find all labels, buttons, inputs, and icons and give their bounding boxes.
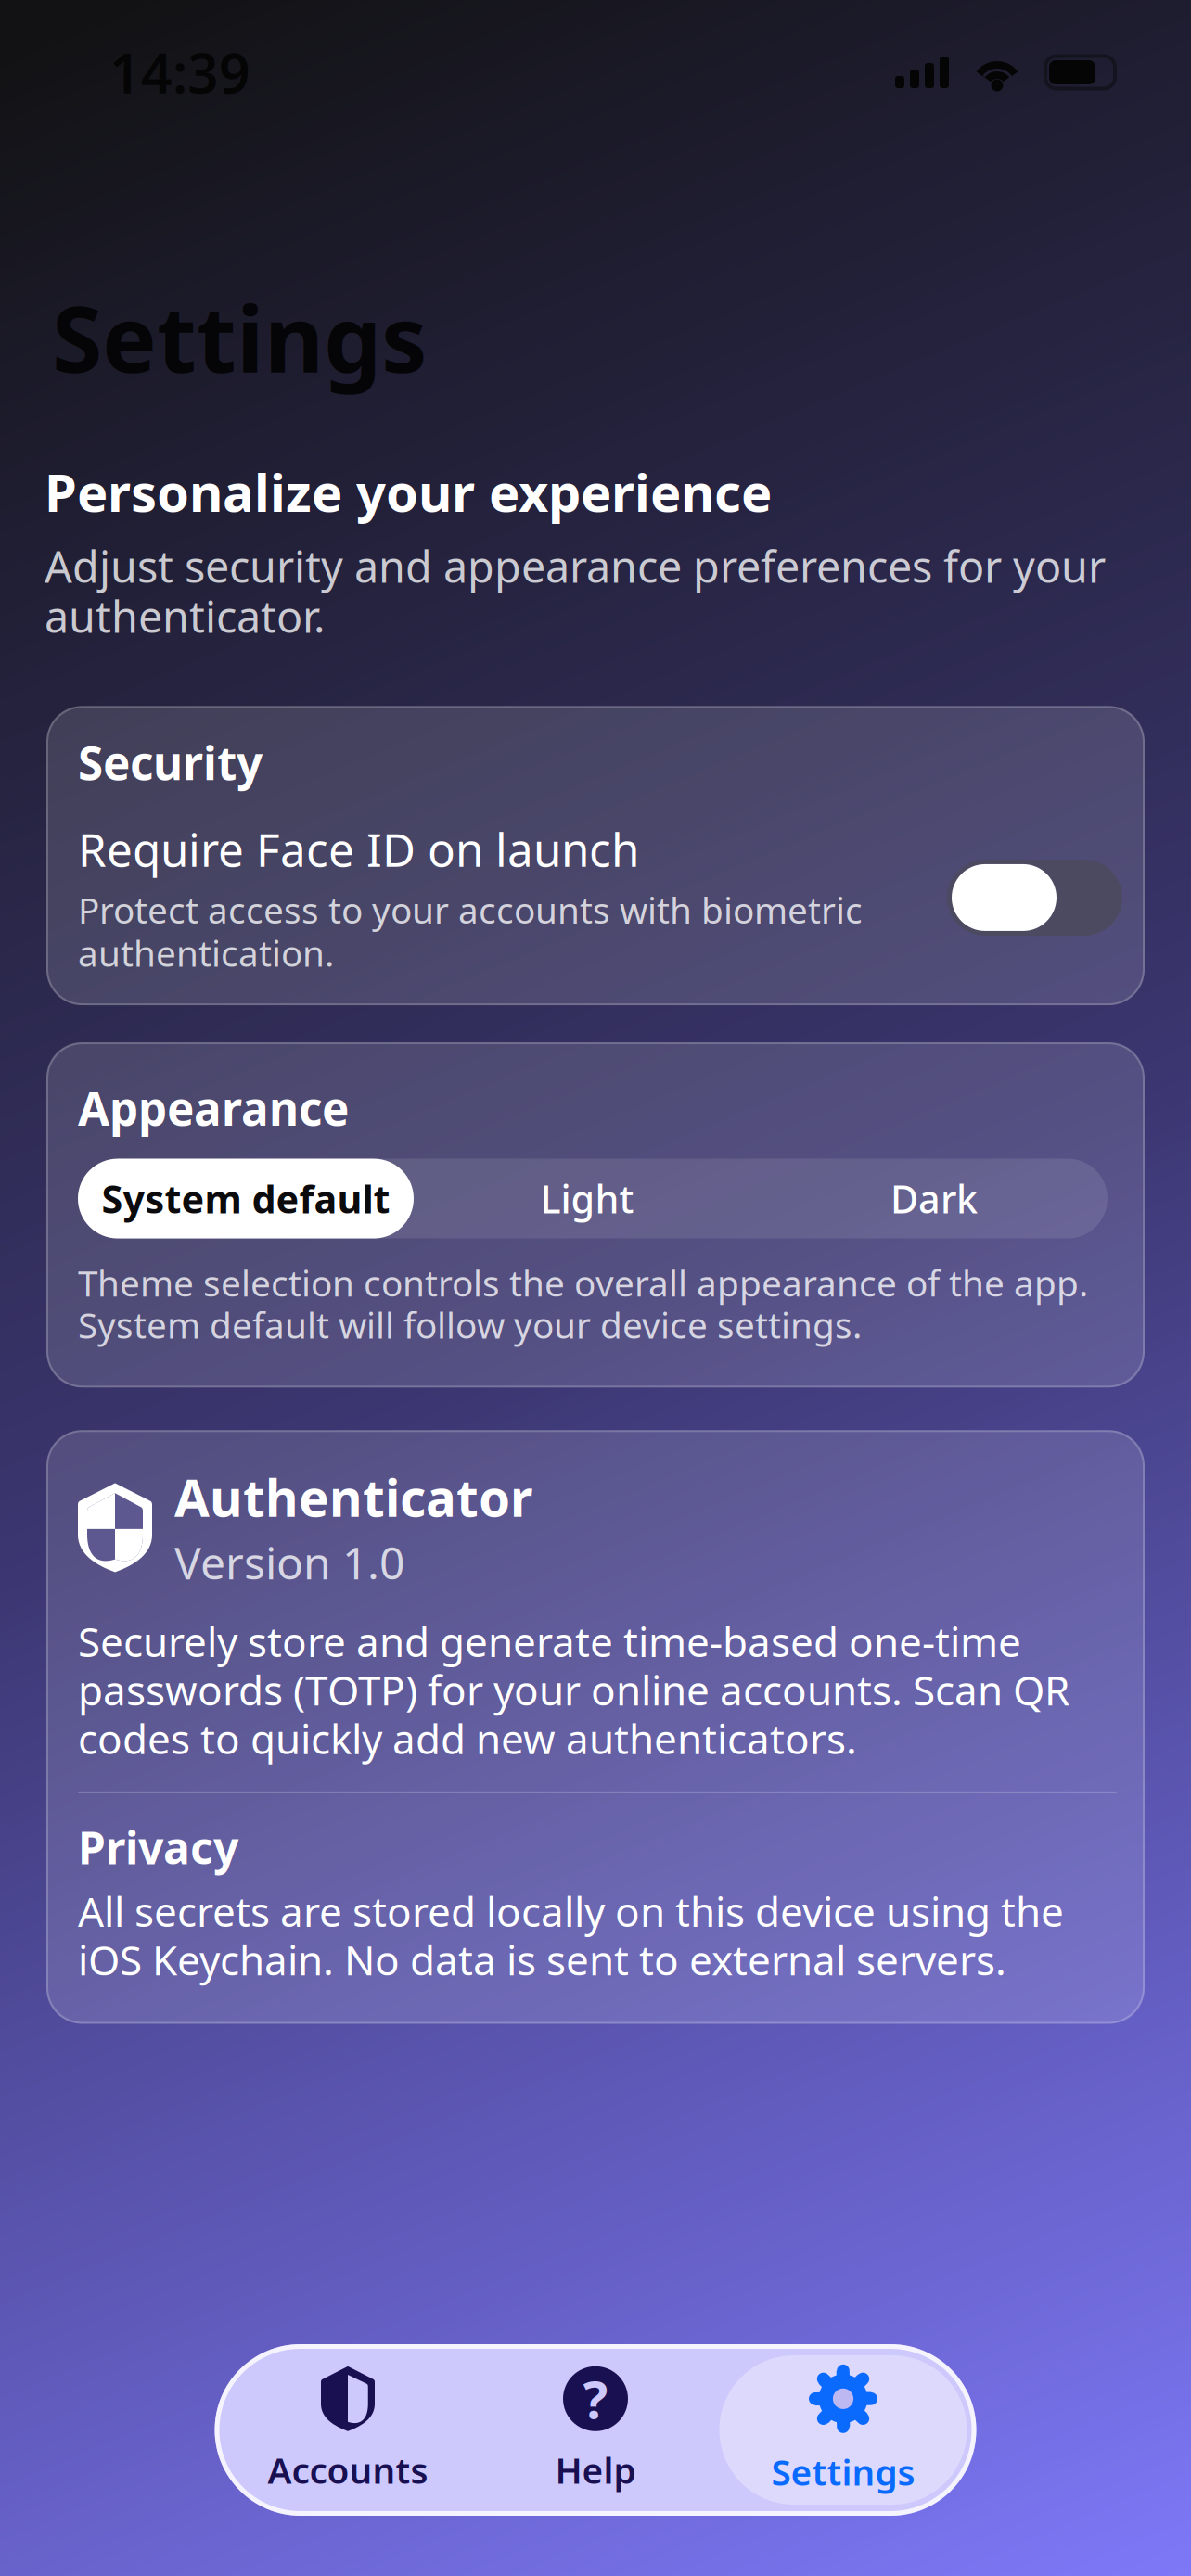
staticText: Appearance [78, 1078, 349, 1138]
staticText: Securely store and generate time-based o… [78, 1614, 1069, 1765]
button[interactable]: Accounts [224, 2344, 472, 2516]
staticText: Light [540, 1173, 634, 1224]
staticText: Require Face ID on launch [78, 819, 639, 879]
staticText: Authenticator [174, 1464, 532, 1531]
staticText: Theme selection controls the overall app… [78, 1259, 1088, 1349]
staticText: All secrets are stored locally on this d… [78, 1884, 1064, 1987]
staticText: Settings [771, 2448, 915, 2495]
button[interactable]: Settings [719, 2344, 967, 2516]
staticText: System default [102, 1173, 390, 1224]
staticText: Adjust security and appearance preferenc… [45, 537, 1106, 645]
staticText: Settings [52, 276, 428, 398]
button[interactable]: ? [472, 2344, 719, 2516]
button[interactable]: Require Face ID on launch [947, 860, 1122, 936]
staticText: Dark [890, 1173, 978, 1224]
staticText: Help [555, 2446, 636, 2494]
staticText: ? [583, 2364, 608, 2433]
staticText: Version 1.0 [174, 1533, 404, 1592]
staticText: Personalize your experience [45, 457, 772, 526]
button[interactable]: Light [414, 1159, 761, 1238]
staticText: Privacy [78, 1817, 238, 1876]
staticText: Accounts [268, 2446, 428, 2494]
staticText: 14:39 [109, 36, 250, 108]
staticText: Protect access to your accounts with bio… [78, 886, 863, 977]
button[interactable]: Dark [761, 1159, 1108, 1238]
staticText: Security [78, 732, 263, 793]
button[interactable]: System default [78, 1159, 414, 1238]
